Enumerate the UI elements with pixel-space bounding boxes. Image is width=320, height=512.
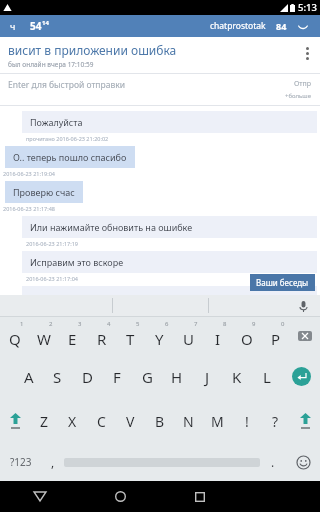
staticText: 54 — [30, 19, 42, 33]
button[interactable]: 5 — [116, 317, 145, 354]
button[interactable]: J — [192, 354, 222, 399]
staticText: P — [271, 329, 281, 349]
button[interactable]: , — [42, 443, 64, 481]
button[interactable]: Enter — [282, 354, 320, 399]
button[interactable]: 9 — [232, 317, 261, 354]
button[interactable]: Shift — [290, 399, 320, 443]
button[interactable]: V — [116, 399, 145, 443]
button[interactable]: 3 — [58, 317, 87, 354]
staticText: Или нажимайте обновить на ошибке — [30, 221, 193, 233]
staticText: A — [24, 367, 34, 387]
staticText: 2016-06-23 21:19:04 — [3, 170, 55, 177]
button[interactable]: 6 — [145, 317, 174, 354]
staticText: ?123 — [10, 455, 32, 469]
button[interactable]: Menu — [296, 19, 310, 33]
staticText: J — [205, 367, 210, 387]
button[interactable]: О.. теперь пошло спасибо — [5, 146, 135, 168]
staticText: 5 — [136, 320, 140, 328]
staticText: ч — [10, 20, 16, 32]
button[interactable]: A — [14, 354, 43, 399]
button[interactable]: значит перезапустите Приложение — [22, 286, 317, 295]
staticText: прочитано 2016-06-23 21:20:02 — [26, 135, 109, 142]
staticText: 2 — [49, 320, 53, 328]
button[interactable]: 4 — [87, 317, 116, 354]
button[interactable]: ! — [232, 399, 261, 443]
button[interactable]: N — [174, 399, 203, 443]
staticText: N — [183, 412, 194, 431]
staticText: 5:13 — [298, 1, 317, 14]
staticText: S — [53, 367, 62, 387]
staticText: +больше — [285, 92, 312, 100]
staticText: , — [51, 454, 55, 470]
staticText: F — [113, 367, 121, 387]
staticText: R — [97, 329, 107, 349]
button[interactable]: D — [72, 354, 102, 399]
button[interactable]: Пожалуйста — [22, 111, 317, 133]
staticText: 6 — [165, 320, 169, 328]
button[interactable]: 7 — [174, 317, 203, 354]
button[interactable]: 2 — [29, 317, 58, 354]
staticText: 0 — [281, 320, 285, 328]
staticText: Пожалуйста — [30, 116, 83, 128]
button[interactable]: Z — [30, 399, 58, 443]
button[interactable]: Space — [64, 443, 260, 481]
staticText: 84 — [276, 20, 287, 32]
button[interactable]: ?123 — [0, 443, 42, 481]
button[interactable]: S — [43, 354, 72, 399]
button[interactable]: B — [145, 399, 174, 443]
button[interactable]: 0 — [261, 317, 290, 354]
button[interactable]: More options — [298, 42, 316, 64]
button[interactable]: Backspace — [290, 317, 320, 354]
button[interactable]: X — [58, 399, 87, 443]
staticText: был онлайн вчера 17:10:59 — [8, 60, 94, 69]
staticText: D — [82, 367, 93, 387]
staticText: ! — [245, 412, 249, 431]
staticText: M — [211, 412, 224, 431]
staticText: Enter для быстрой отправки — [8, 79, 125, 91]
button[interactable]: L — [252, 354, 282, 399]
staticText: Y — [155, 329, 164, 349]
button[interactable]: Shift — [0, 399, 30, 443]
staticText: T — [126, 329, 135, 349]
staticText: ? — [272, 412, 279, 431]
staticText: . — [271, 454, 275, 470]
button[interactable]: Проверю счас — [5, 181, 83, 203]
button[interactable]: ? — [261, 399, 290, 443]
staticText: U — [183, 329, 194, 349]
button[interactable]: Back — [0, 481, 80, 512]
button[interactable]: 8 — [203, 317, 232, 354]
staticText: W — [37, 329, 51, 349]
staticText: H — [171, 367, 183, 387]
staticText: X — [68, 412, 77, 431]
button[interactable]: Recent apps — [160, 481, 240, 512]
staticText: 8 — [223, 320, 227, 328]
button[interactable]: H — [162, 354, 192, 399]
button[interactable]: Исправим это вскоре — [22, 251, 317, 273]
button[interactable]: C — [87, 399, 116, 443]
staticText: I — [215, 329, 221, 349]
staticText: V — [126, 412, 135, 431]
staticText: висит в приложении ошибка — [8, 42, 177, 58]
staticText: Q — [9, 329, 21, 349]
staticText: O — [241, 329, 253, 349]
staticText: 9 — [252, 320, 256, 328]
button[interactable]: 1 — [0, 317, 29, 354]
staticText: 14 — [42, 19, 49, 27]
staticText: 1 — [20, 320, 24, 328]
button[interactable]: F — [102, 354, 132, 399]
button[interactable]: M — [203, 399, 232, 443]
button[interactable]: Emoji — [286, 443, 320, 481]
staticText: L — [263, 367, 271, 387]
button[interactable]: Home — [80, 481, 160, 512]
button[interactable]: K — [222, 354, 252, 399]
staticText: 4 — [107, 320, 111, 328]
button[interactable]: G — [132, 354, 162, 399]
staticText: 2016-06-23 21:17:04 — [26, 275, 78, 282]
button[interactable]: . — [260, 443, 286, 481]
staticText: О.. теперь пошло спасибо — [13, 151, 127, 163]
button[interactable]: Или нажимайте обновить на ошибке — [22, 216, 317, 238]
button[interactable]: Voice input — [296, 299, 310, 313]
staticText: G — [142, 367, 153, 387]
staticText: C — [97, 412, 106, 431]
button[interactable]: Ваши беседы — [250, 274, 315, 291]
